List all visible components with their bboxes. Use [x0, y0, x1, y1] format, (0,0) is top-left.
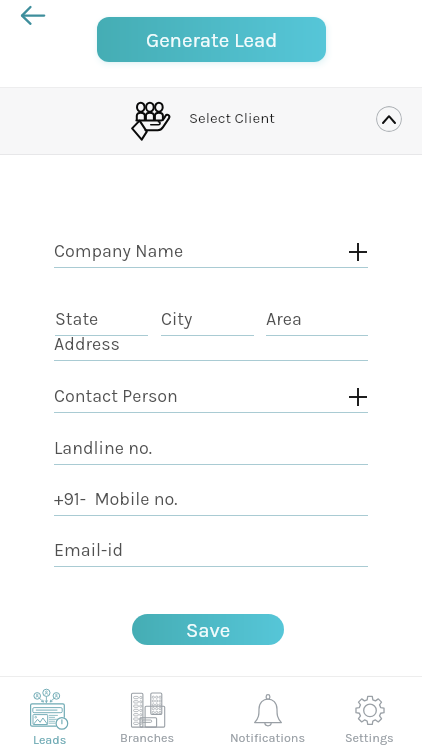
staticText: State: [55, 309, 99, 330]
staticText: Address: [54, 334, 120, 355]
button[interactable]: +91- Mobile no.: [54, 489, 368, 516]
button[interactable]: Save: [132, 614, 284, 645]
staticText: Contact Person: [54, 386, 178, 407]
button[interactable]: Select Client: [0, 87, 422, 155]
staticText: Landline no.: [54, 438, 152, 459]
staticText: City: [161, 309, 193, 330]
button[interactable]: Email-id: [54, 540, 368, 567]
button[interactable]: Settings: [316, 676, 422, 750]
button[interactable]: Generate Lead: [97, 17, 326, 62]
button[interactable]: Contact Person: [54, 386, 368, 413]
staticText: Select Client: [189, 109, 275, 127]
staticText: Email-id: [54, 540, 124, 561]
button[interactable]: Landline no.: [54, 438, 368, 465]
staticText: Generate Lead: [146, 28, 278, 52]
button[interactable]: Company Name: [54, 241, 368, 268]
staticText: +91- Mobile no.: [54, 489, 178, 510]
staticText: Company Name: [54, 241, 184, 262]
staticText: Settings: [345, 730, 394, 745]
button[interactable]: Back: [17, 2, 49, 30]
button[interactable]: City: [161, 309, 254, 336]
button[interactable]: Branches: [105, 676, 210, 750]
button[interactable]: Leads: [0, 676, 105, 750]
staticText: Save: [186, 618, 231, 642]
button[interactable]: State: [55, 309, 148, 336]
button[interactable]: Address: [54, 334, 368, 361]
staticText: Branches: [120, 730, 175, 745]
staticText: Leads: [33, 732, 67, 747]
staticText: Notifications: [230, 730, 306, 745]
button[interactable]: Notifications: [210, 676, 316, 750]
button[interactable]: Area: [266, 309, 368, 336]
staticText: Area: [266, 309, 302, 330]
button[interactable]: Collapse: [376, 106, 402, 132]
